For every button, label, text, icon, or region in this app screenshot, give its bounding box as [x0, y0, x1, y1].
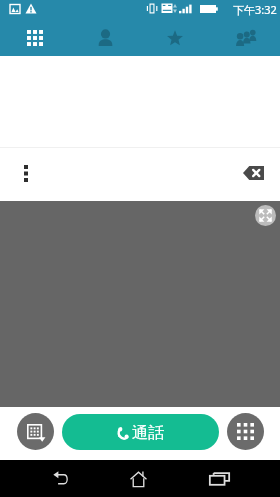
button[interactable]: Home — [116, 460, 160, 497]
button[interactable]: Contacts — [70, 18, 140, 56]
button[interactable]: Back — [38, 460, 82, 497]
button[interactable]: Keypad — [227, 413, 264, 450]
button[interactable]: Fullscreen — [255, 205, 276, 226]
staticText: 通話 — [132, 423, 164, 443]
button[interactable]: Dialpad — [0, 18, 70, 56]
button[interactable]: Recents — [197, 460, 241, 497]
button[interactable]: 通話 — [62, 414, 219, 450]
button[interactable]: Favorites — [140, 18, 210, 56]
button[interactable]: Hide keypad — [17, 413, 54, 450]
staticText: 下午3:32 — [233, 2, 277, 17]
button[interactable]: Delete — [231, 151, 275, 195]
button[interactable]: More options — [4, 151, 48, 195]
button[interactable]: Groups — [210, 18, 280, 56]
